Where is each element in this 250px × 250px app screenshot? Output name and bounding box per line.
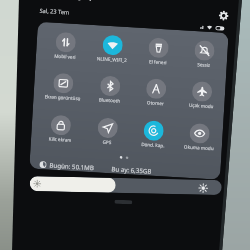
- button[interactable]: Sessiz: [180, 38, 228, 70]
- button[interactable]: Brightness: [30, 176, 222, 195]
- button[interactable]: Settings: [218, 10, 229, 21]
- button[interactable]: Okuma modu: [176, 121, 223, 153]
- button[interactable]: Dönd. kap.: [130, 118, 177, 150]
- staticText: Bugün: 50.1MB: [49, 161, 95, 171]
- staticText: Dönd. kap.: [130, 140, 176, 149]
- staticText: Kilit ekranı: [37, 135, 83, 143]
- button[interactable]: Mobil veri: [42, 30, 89, 62]
- staticText: Bluetooth: [86, 96, 133, 104]
- staticText: Okuma modu: [176, 143, 222, 152]
- button[interactable]: Uçak modu: [178, 79, 226, 111]
- staticText: Uçak modu: [178, 101, 224, 110]
- button[interactable]: Bluetooth: [86, 74, 134, 105]
- button[interactable]: Kilit ekranı: [37, 113, 84, 145]
- staticText: Sessiz: [181, 60, 227, 69]
- staticText: Otomer: [132, 98, 178, 107]
- staticText: Sal, 23 Tem: [39, 7, 70, 16]
- staticText: 19:04: [52, 0, 94, 6]
- button[interactable]: El feneri: [135, 35, 182, 67]
- staticText: GPS: [84, 138, 130, 146]
- staticText: Ekran görüntüsü: [39, 93, 86, 102]
- button[interactable]: NLINE_WIFI_2: [89, 33, 136, 64]
- staticText: El feneri: [135, 57, 181, 66]
- staticText: NLINE_WIFI_2: [89, 55, 135, 63]
- button[interactable]: GPS: [84, 116, 131, 147]
- button[interactable]: Otomer: [132, 76, 180, 108]
- staticText: Mobil veri: [42, 52, 88, 61]
- staticText: Bu ay: 6,35GB: [111, 164, 153, 175]
- button[interactable]: Ekran görüntüsü: [39, 71, 87, 103]
